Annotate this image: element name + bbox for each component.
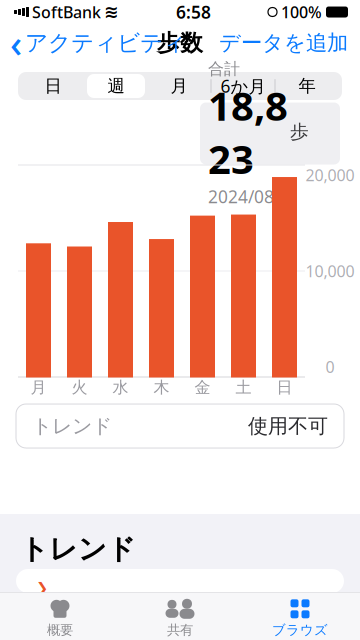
staticText: トレンド [20,532,136,566]
staticText: 歩 [290,120,309,143]
staticText: ブラウズ [272,622,328,638]
staticText: 日 [44,75,61,97]
button[interactable]: 6か月 [211,72,274,100]
staticText: データを追加 [219,30,348,56]
button[interactable]: 共有 [120,596,240,640]
button[interactable]: ブラウズ [240,596,360,640]
staticText: 金 [194,378,210,397]
staticText: アクティビティ [25,29,186,57]
staticText: 火 [71,378,87,397]
staticText: 合計 [208,59,240,79]
button[interactable]: 年 [275,72,338,100]
staticText: SoftBank [32,1,101,23]
staticText: 使用不可 [248,414,328,438]
staticText: 20,000 [305,164,354,186]
staticText: 月 [170,75,187,97]
staticText: 週 [107,75,124,97]
staticText: 水 [112,378,128,397]
staticText: ≋ [104,2,119,22]
staticText: ‹ [10,18,22,68]
staticText: 概要 [47,622,73,638]
staticText: 6:58 [176,0,211,23]
staticText: 日 [276,378,292,397]
button[interactable]: データを追加 [219,30,360,56]
staticText: 2024/08/11 [208,185,300,208]
staticText: 月 [30,378,46,397]
staticText: 年 [298,75,315,97]
staticText: ❯ [36,580,48,596]
staticText: トレンド [32,414,112,438]
staticText: 6か月 [220,74,265,97]
staticText: 歩数 [157,29,203,57]
staticText: 土 [235,378,251,397]
button[interactable]: 週 [84,72,147,100]
button[interactable]: ‹ [0,18,186,68]
staticText: 共有 [167,622,193,638]
staticText: 0 [325,356,334,377]
button[interactable]: 月 [147,72,210,100]
button[interactable]: トレンド [16,404,344,448]
staticText: 10,000 [305,260,354,282]
button[interactable]: 概要 [0,596,120,640]
staticText: 18,823 [208,79,288,185]
staticText: 100% [281,1,322,23]
button[interactable]: 日 [21,72,84,100]
staticText: 木 [153,378,169,397]
